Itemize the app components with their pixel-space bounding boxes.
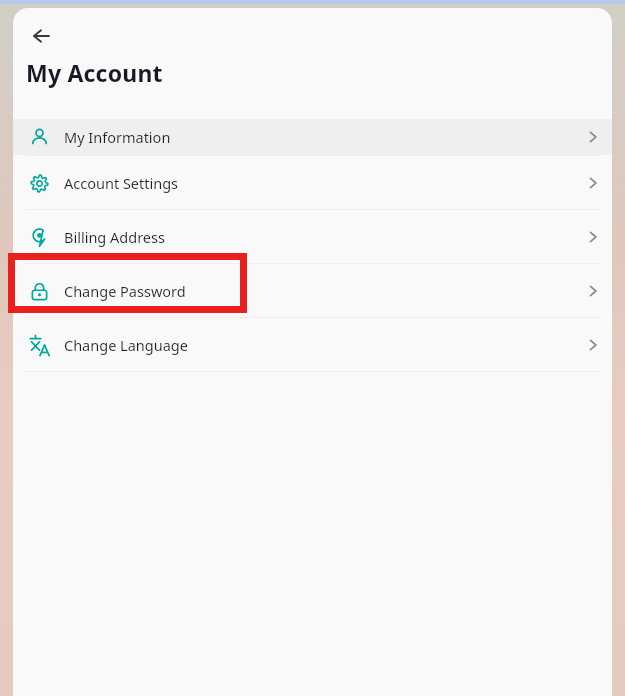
staticText: My Information <box>64 127 171 147</box>
button[interactable]: Billing Address <box>13 210 612 263</box>
button[interactable]: Back <box>21 16 61 56</box>
staticText: My Account <box>26 57 163 88</box>
staticText: Change Password <box>64 281 186 301</box>
staticText: Billing Address <box>64 227 165 247</box>
button[interactable]: Change Language <box>13 318 612 371</box>
staticText: Account Settings <box>64 173 179 193</box>
button[interactable]: Account Settings <box>13 156 612 209</box>
button[interactable]: My Information <box>13 119 612 155</box>
button[interactable]: Change Password <box>13 264 612 317</box>
staticText: Change Language <box>64 335 188 355</box>
